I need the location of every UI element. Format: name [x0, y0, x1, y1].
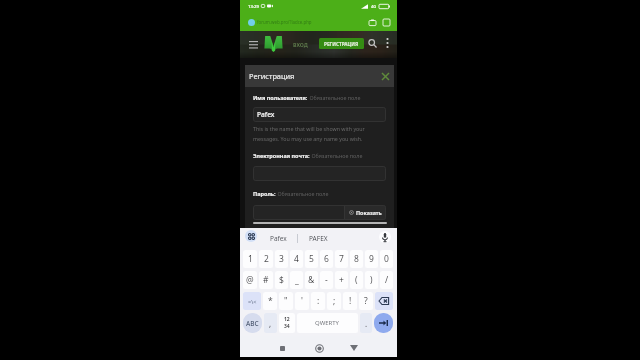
button[interactable]: Menu — [246, 35, 260, 54]
staticText: Обязательное поле — [276, 190, 329, 197]
staticText: Имя пользователя: — [253, 94, 308, 101]
staticText: 0 — [384, 253, 389, 265]
staticText: * — [268, 295, 273, 307]
staticText: 9 — [369, 253, 374, 265]
button[interactable]: $ — [275, 271, 288, 289]
staticText: This is the name that will be shown with… — [253, 125, 365, 132]
button[interactable]: / — [380, 271, 393, 289]
staticText: 13:29 — [248, 3, 259, 9]
button[interactable]: Keyboard settings — [245, 230, 257, 242]
button[interactable]: * — [263, 292, 277, 310]
button[interactable]: Numeric keyboard — [279, 313, 295, 333]
button[interactable]: Backspace — [375, 292, 393, 310]
button[interactable]: 0 — [380, 250, 393, 268]
button[interactable]: ABC — [243, 313, 262, 333]
button[interactable]: РЕГИСТРАЦИЯ — [319, 38, 364, 49]
button[interactable]: More options — [380, 36, 394, 50]
staticText: ; — [333, 295, 336, 307]
button[interactable]: ( — [350, 271, 363, 289]
staticText: ' — [301, 295, 303, 307]
button[interactable]: QWERTY — [297, 313, 358, 333]
staticText: Pafex — [270, 234, 287, 243]
button[interactable]: Close — [379, 70, 391, 82]
button[interactable]: ' — [295, 292, 309, 310]
button[interactable]: & — [305, 271, 318, 289]
staticText: $ — [279, 274, 284, 286]
button[interactable]: ВХОД — [292, 35, 309, 54]
staticText: ? — [364, 295, 368, 307]
button[interactable]: # — [259, 271, 273, 289]
staticText: : — [317, 295, 320, 307]
button[interactable] — [253, 166, 386, 181]
staticText: / — [385, 274, 389, 286]
button[interactable]: Recent apps — [274, 340, 290, 356]
button[interactable]: @ — [243, 271, 257, 289]
button[interactable]: Pafex — [264, 228, 293, 248]
staticText: . — [365, 318, 368, 329]
staticText: Обязательное поле — [310, 152, 363, 159]
button[interactable]: Tabs — [381, 17, 391, 27]
staticText: ( — [355, 274, 358, 286]
button[interactable]: =\< — [243, 292, 261, 310]
staticText: forum.web.pro/?ladce.php — [257, 19, 312, 25]
button[interactable]: ) — [365, 271, 378, 289]
button[interactable]: PAFEX — [302, 228, 335, 248]
staticText: & — [308, 274, 315, 286]
button[interactable]: Downloads — [367, 17, 377, 27]
button[interactable]: 9 — [365, 250, 378, 268]
staticText: ! — [349, 295, 352, 307]
button[interactable]: Hide keyboard — [346, 340, 362, 356]
staticText: 34 — [284, 323, 290, 330]
button[interactable]: " — [279, 292, 293, 310]
button[interactable]: + — [335, 271, 348, 289]
staticText: Показать — [356, 209, 382, 216]
button[interactable]: Next field — [374, 313, 393, 333]
staticText: , — [269, 318, 272, 329]
staticText: Пароль: — [253, 190, 276, 197]
staticText: 4 — [294, 253, 299, 265]
staticText: @ — [246, 274, 254, 286]
button[interactable]: Comma — [264, 313, 277, 333]
button[interactable]: Home — [311, 340, 327, 356]
button[interactable]: ? — [359, 292, 373, 310]
staticText: 4G — [371, 4, 377, 9]
staticText: ) — [370, 274, 373, 286]
staticText: Pafex — [257, 110, 275, 119]
staticText: 3 — [279, 253, 284, 265]
staticText: 12 — [284, 316, 290, 323]
staticText: Электронная почта: — [253, 152, 310, 159]
staticText: _ — [295, 274, 299, 286]
button[interactable]: 7 — [335, 250, 348, 268]
staticText: - — [325, 274, 328, 286]
staticText: 6 — [324, 253, 329, 265]
staticText: # — [263, 274, 269, 286]
button[interactable]: 3 — [275, 250, 288, 268]
staticText: 7 — [339, 253, 344, 265]
staticText: " — [284, 295, 288, 307]
staticText: 1 — [248, 253, 253, 265]
staticText: QWERTY — [315, 319, 340, 327]
staticText: 8 — [354, 253, 359, 265]
staticText: =\< — [248, 298, 257, 305]
button[interactable]: Voice input — [379, 231, 391, 243]
button[interactable]: Pafex — [253, 107, 386, 122]
button[interactable]: _ — [290, 271, 303, 289]
staticText: + — [339, 274, 344, 286]
button[interactable]: 8 — [350, 250, 363, 268]
staticText: ABC — [246, 319, 259, 328]
button[interactable]: ; — [327, 292, 341, 310]
button[interactable]: 2 — [259, 250, 273, 268]
button[interactable]: 4 — [290, 250, 303, 268]
button[interactable]: - — [320, 271, 333, 289]
button[interactable]: Period — [360, 313, 372, 333]
staticText: ВХОД — [293, 41, 308, 48]
button[interactable]: 5 — [305, 250, 318, 268]
button[interactable]: Search — [365, 36, 379, 50]
button[interactable]: 1 — [243, 250, 257, 268]
button[interactable]: 6 — [320, 250, 333, 268]
staticText: 2 — [264, 253, 269, 265]
button[interactable]: Показать — [345, 205, 386, 220]
button[interactable]: ! — [343, 292, 357, 310]
staticText: messages. You may use any name you wish. — [253, 135, 363, 142]
button[interactable]: : — [311, 292, 325, 310]
